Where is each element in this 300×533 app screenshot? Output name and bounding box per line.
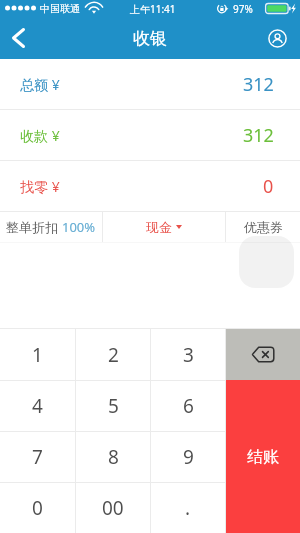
staticText: 7 xyxy=(32,444,43,470)
staticText: 收款 ¥ xyxy=(20,126,60,145)
staticText: 4 xyxy=(32,393,43,419)
button[interactable]: 找零 ¥ xyxy=(0,161,300,211)
staticText: 3 xyxy=(183,342,194,368)
button[interactable]: Back xyxy=(0,17,40,59)
staticText: 结账 xyxy=(247,447,279,467)
button[interactable]: 整单折扣 xyxy=(0,212,102,242)
button[interactable]: 8 xyxy=(76,432,150,482)
button[interactable]: 7 xyxy=(0,432,75,482)
button[interactable]: 3 xyxy=(151,329,225,380)
button[interactable]: 总额 ¥ xyxy=(0,59,300,109)
staticText: 优惠券 xyxy=(244,219,283,235)
button[interactable]: 优惠券 xyxy=(226,212,300,242)
staticText: 0 xyxy=(32,495,43,521)
button[interactable]: 4 xyxy=(0,381,75,431)
staticText: 6 xyxy=(183,393,194,419)
button[interactable]: 0 xyxy=(0,483,75,533)
staticText: 1 xyxy=(32,342,43,368)
button[interactable]: 5 xyxy=(76,381,150,431)
staticText: 00 xyxy=(102,495,124,521)
button[interactable]: 00 xyxy=(76,483,150,533)
staticText: 2 xyxy=(108,342,119,368)
staticText: 312 xyxy=(243,123,274,148)
staticText: 100% xyxy=(62,218,96,236)
button[interactable]: 6 xyxy=(151,381,225,431)
button[interactable]: 9 xyxy=(151,432,225,482)
button[interactable]: 现金 xyxy=(103,212,225,242)
button[interactable]: . xyxy=(151,483,225,533)
staticText: 312 xyxy=(243,72,274,97)
staticText: 中国联通 xyxy=(40,2,80,15)
button[interactable]: 1 xyxy=(0,329,75,380)
staticText: 整单折扣 xyxy=(6,219,58,235)
staticText: . xyxy=(185,495,191,521)
button[interactable]: Backspace xyxy=(226,329,300,380)
staticText: 现金 xyxy=(146,219,172,235)
button[interactable]: Account xyxy=(258,17,300,59)
staticText: 5 xyxy=(108,393,119,419)
button[interactable]: 2 xyxy=(76,329,150,380)
staticText: 0 xyxy=(263,174,274,199)
button[interactable]: 收款 ¥ xyxy=(0,110,300,160)
staticText: 97% xyxy=(233,2,253,16)
staticText: 9 xyxy=(183,444,194,470)
staticText: 总额 ¥ xyxy=(20,75,60,94)
staticText: 上午11:41 xyxy=(130,2,176,16)
button[interactable]: 结账 xyxy=(226,380,300,533)
staticText: 找零 ¥ xyxy=(20,177,60,196)
staticText: 8 xyxy=(108,444,119,470)
staticText: 收银 xyxy=(133,28,167,49)
